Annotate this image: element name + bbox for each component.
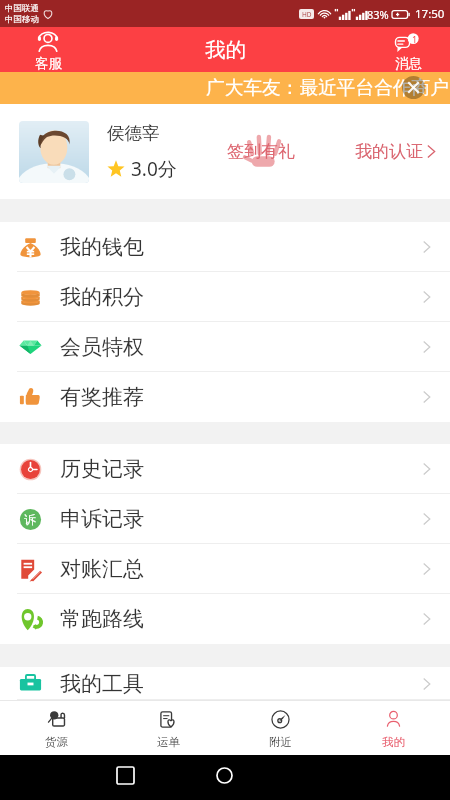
button[interactable]: 运单 (112, 701, 224, 755)
button[interactable]: 我的钱包 (0, 222, 450, 272)
staticText: 运单 (157, 735, 180, 749)
button[interactable]: 对账汇总 (0, 544, 450, 594)
staticText: 对账汇总 (60, 556, 144, 582)
button[interactable]: 头像 (19, 121, 89, 183)
staticText: 3.0分 (131, 156, 177, 182)
button[interactable]: 消息 (366, 27, 450, 72)
staticText: 侯德宰 (107, 122, 160, 144)
staticText: 83% (367, 7, 389, 22)
button[interactable]: 我的 (337, 701, 450, 755)
staticText: 签到有礼 (227, 141, 295, 162)
staticText: 我的工具 (60, 671, 144, 697)
staticText: 货源 (45, 735, 68, 749)
button[interactable]: 我的积分 (0, 272, 450, 322)
staticText: 常跑路线 (60, 606, 144, 632)
staticText: 附近 (269, 735, 292, 749)
staticText: 客服 (35, 55, 62, 72)
staticText: 会员特权 (60, 334, 144, 360)
staticText: HD (302, 10, 312, 19)
staticText: 广大车友：最近平台合作商户 (206, 76, 449, 100)
staticText: 消息 (395, 55, 422, 72)
staticText: 我的积分 (60, 284, 144, 310)
button[interactable]: Recents (117, 767, 134, 784)
button[interactable]: 附近 (224, 701, 337, 755)
staticText: 我的钱包 (60, 234, 144, 260)
staticText: 中国移动 (5, 14, 39, 25)
staticText: 我的认证 (355, 141, 423, 162)
staticText: 有奖推荐 (60, 384, 144, 410)
staticText: 我的 (382, 735, 405, 749)
button[interactable]: 签到有礼 (218, 104, 304, 199)
button[interactable]: 历史记录 (0, 444, 450, 494)
staticText: 申诉记录 (60, 506, 144, 532)
button[interactable]: 我的认证 (355, 104, 436, 199)
button[interactable]: 常跑路线 (0, 594, 450, 644)
button[interactable]: 诉 (0, 494, 450, 544)
button[interactable]: 客服 (0, 27, 96, 72)
button[interactable]: 关闭 (402, 76, 425, 99)
staticText: 17:50 (415, 6, 445, 22)
button[interactable]: 货源 (0, 701, 112, 755)
button[interactable]: Home (216, 767, 233, 784)
staticText: 我的 (205, 37, 246, 63)
staticText: 历史记录 (60, 456, 144, 482)
staticText: 中国联通 (5, 3, 39, 14)
staticText: 1 (412, 33, 418, 45)
button[interactable]: 有奖推荐 (0, 372, 450, 422)
button[interactable]: 我的工具 (0, 667, 450, 700)
button[interactable]: 会员特权 (0, 322, 450, 372)
staticText: 诉 (24, 512, 36, 527)
